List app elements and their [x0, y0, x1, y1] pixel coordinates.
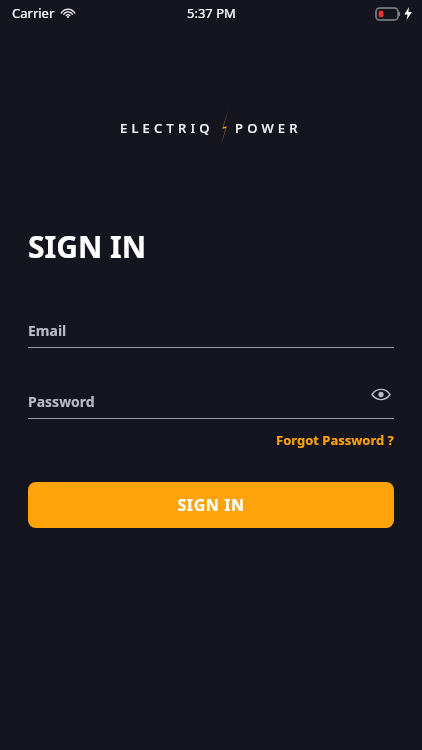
staticText: Forgot Password ?	[276, 431, 394, 449]
button[interactable]: Email	[28, 310, 394, 348]
staticText: SIGN IN	[177, 494, 245, 516]
staticText: Email	[28, 321, 67, 340]
staticText: Carrier	[12, 4, 55, 22]
button[interactable]: Forgot Password ?	[28, 428, 394, 452]
staticText: SIGN IN	[28, 226, 147, 267]
button[interactable]: Password	[28, 381, 394, 419]
button[interactable]: Show password	[368, 381, 394, 407]
staticText: 5:37 PM	[187, 4, 236, 22]
staticText: Password	[28, 392, 95, 411]
staticText: ELECTRIQ	[120, 119, 214, 137]
staticText: POWER	[235, 119, 302, 137]
button[interactable]: SIGN IN	[28, 482, 394, 528]
